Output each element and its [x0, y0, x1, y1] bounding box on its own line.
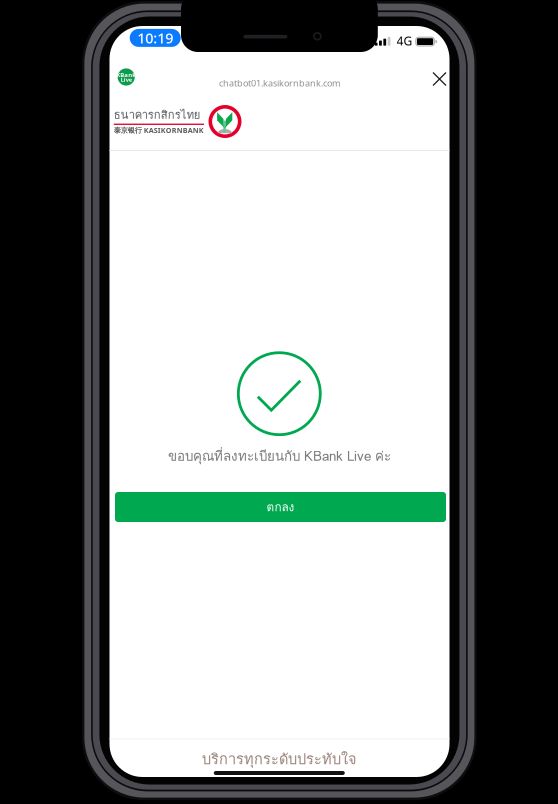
staticText: Live [121, 76, 132, 83]
button[interactable]: KBank Live [118, 68, 135, 86]
staticText: ขอบคุณที่ลงทะเบียนกับ KBank Live ค่ะ [168, 445, 391, 467]
button[interactable]: ตกลง [115, 492, 446, 522]
staticText: บริการทุกระดับประทับใจ [202, 747, 357, 771]
staticText: chatbot01.kasikornbank.com [219, 77, 340, 89]
staticText: ตกลง [266, 498, 294, 516]
button[interactable]: Close [422, 63, 456, 95]
staticText: ธนาคารกสิกรไทย [114, 106, 201, 124]
staticText: KBank [116, 71, 136, 79]
staticText: 4G [396, 33, 412, 49]
staticText: 泰京银行 KASIKORNBANK [114, 125, 204, 135]
staticText: 10:19 [137, 28, 173, 48]
